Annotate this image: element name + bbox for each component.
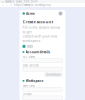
staticText: Domain: [22, 92, 32, 96]
staticText: Email address: [22, 64, 38, 67]
staticText: Continue: [46, 73, 60, 76]
staticText: Account details: [25, 50, 50, 54]
staticText: Fill in the details below to get: [22, 25, 60, 34]
staticText: ← → ⟳: [2, 3, 12, 6]
staticText: Create account: [22, 19, 53, 24]
staticText: Full name: [22, 55, 34, 59]
staticText: Acme: [26, 11, 35, 16]
staticText: ⌂ example page title here: [2, 0, 38, 3]
staticText: Team name: [22, 84, 34, 87]
staticText: https://example.com/signup: [14, 3, 51, 7]
staticText: started with your new workspace.: [22, 34, 57, 43]
button[interactable]: Continue: [44, 73, 62, 77]
staticText: Workspace: [25, 79, 43, 83]
